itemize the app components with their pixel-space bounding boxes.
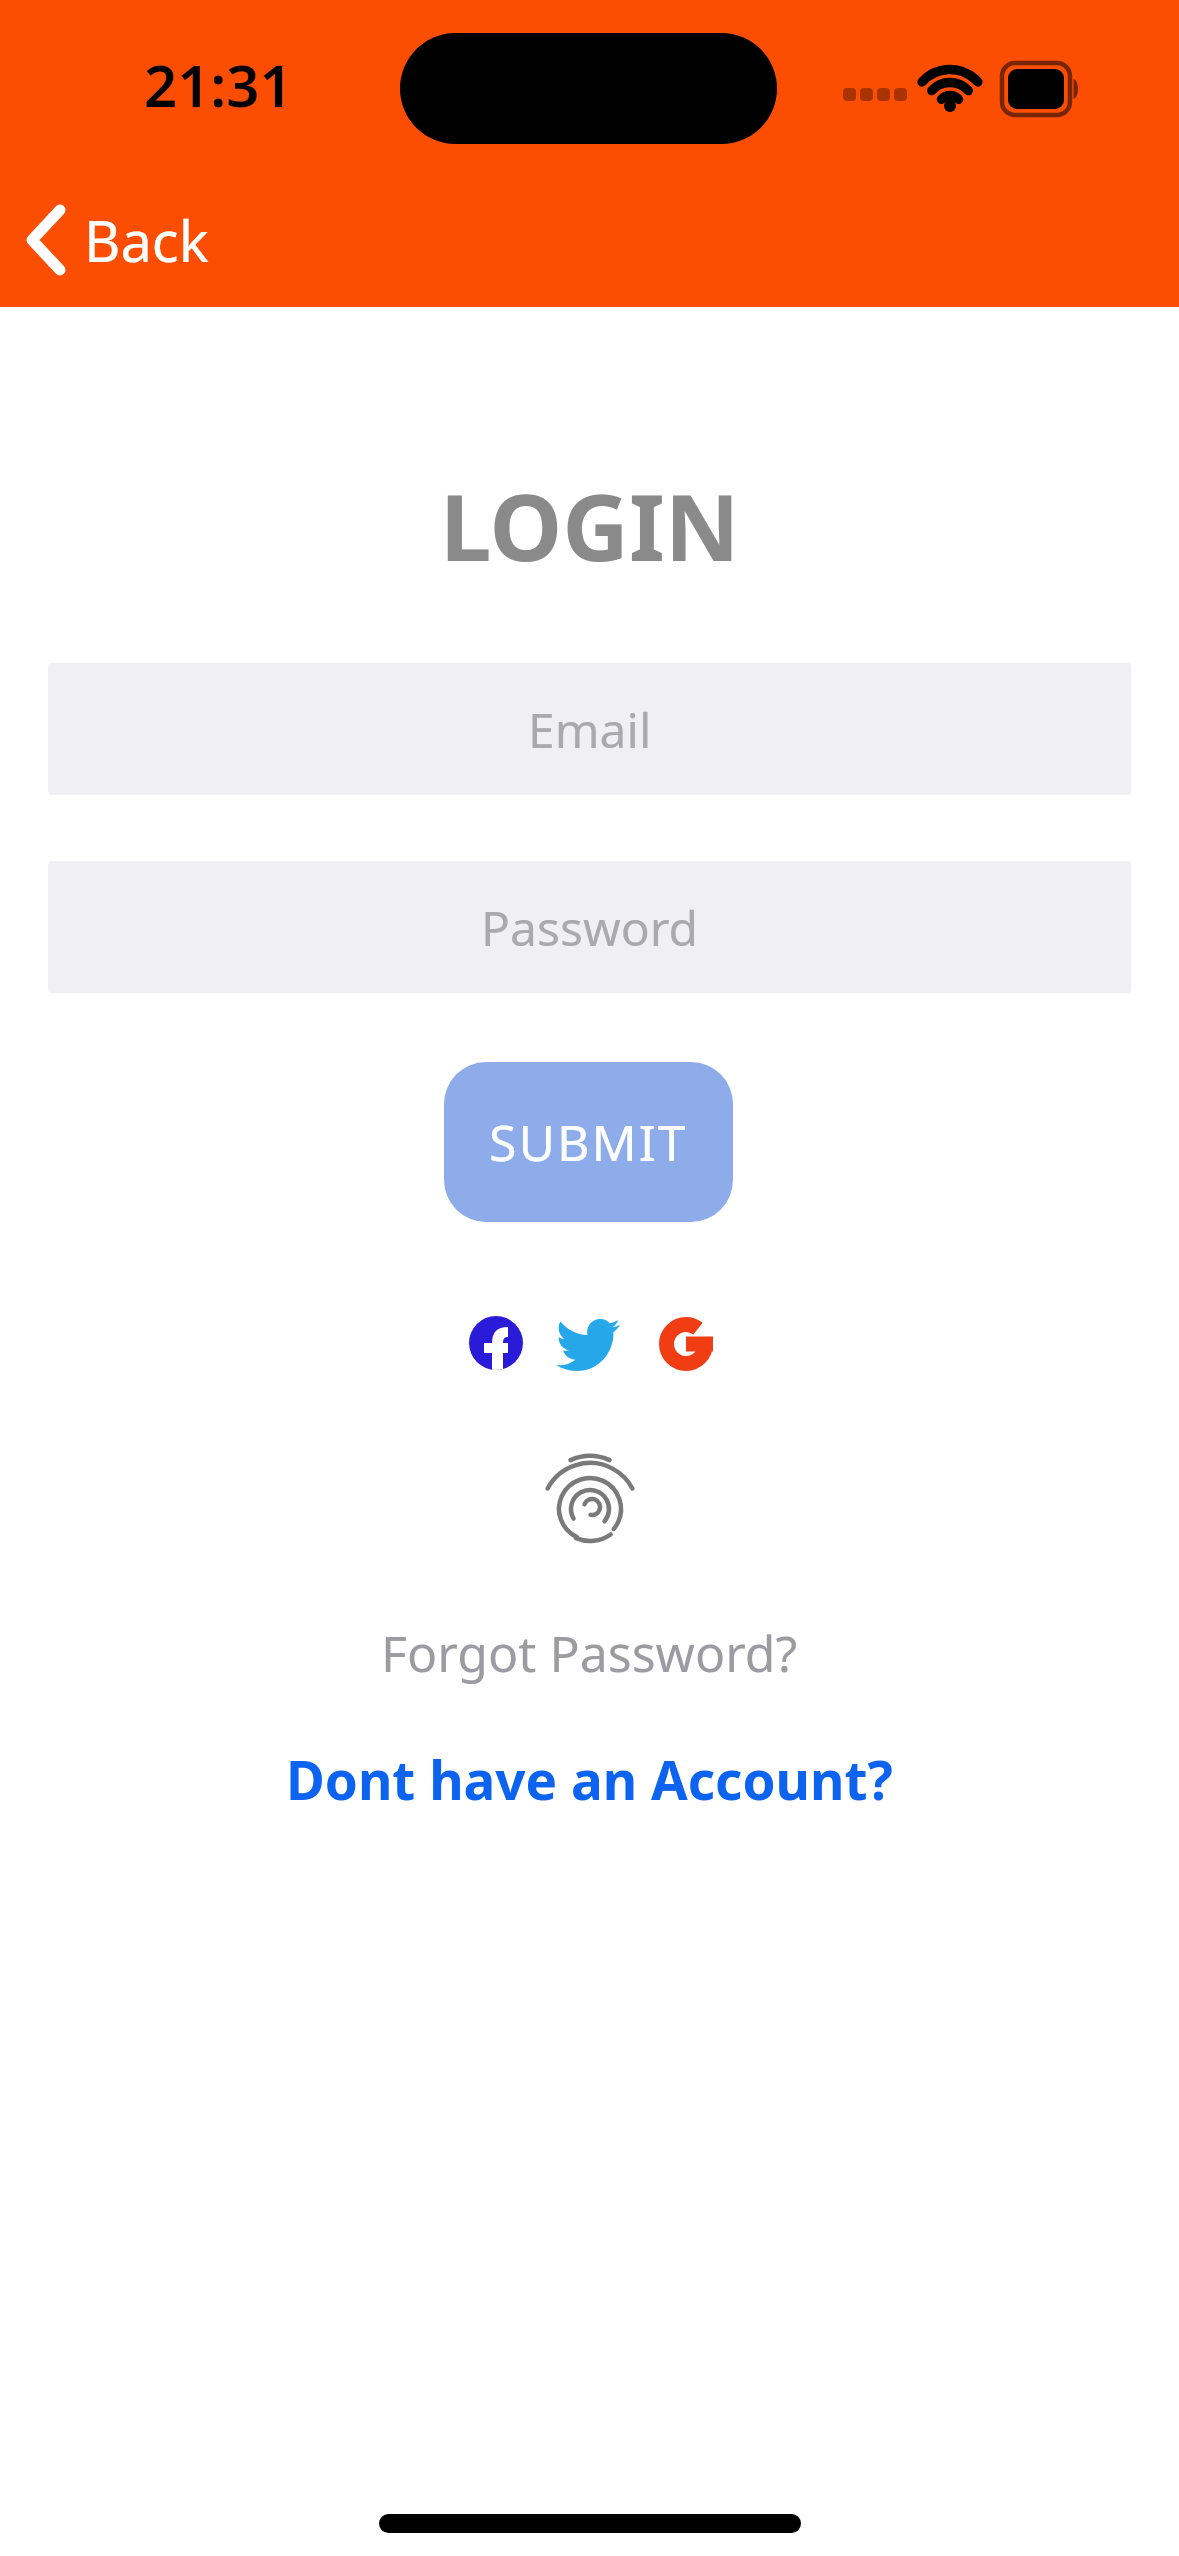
staticText: 21:31 [144, 45, 293, 124]
button[interactable] [546, 1449, 634, 1547]
staticText: SUBMIT [489, 1108, 688, 1176]
staticText: Forgot Password? [381, 1619, 798, 1687]
button[interactable] [469, 1316, 523, 1370]
button[interactable]: Dont have an Account? [276, 1743, 903, 1815]
button[interactable] [659, 1317, 713, 1371]
staticText: Dont have an Account? [286, 1743, 893, 1815]
button[interactable]: Forgot Password? [371, 1619, 808, 1687]
button[interactable]: SUBMIT [444, 1062, 733, 1222]
button[interactable]: Back [16, 200, 217, 280]
staticText: Back [84, 202, 209, 278]
button[interactable]: Password [48, 861, 1131, 993]
button[interactable]: Email [48, 663, 1131, 795]
button[interactable] [556, 1313, 620, 1367]
staticText: Password [481, 895, 699, 960]
staticText: LOGIN [440, 463, 740, 583]
staticText: Email [528, 697, 652, 762]
